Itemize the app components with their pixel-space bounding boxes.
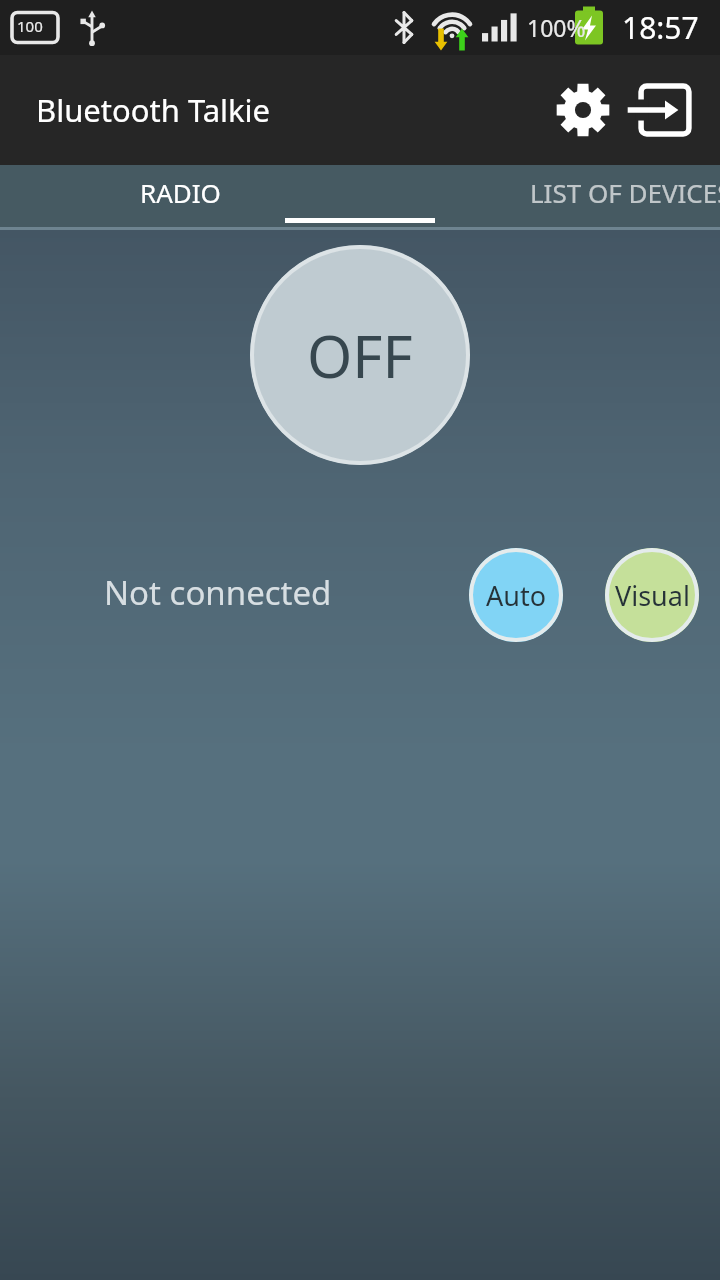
- staticText: RADIO: [140, 175, 221, 210]
- button[interactable]: Exit: [624, 69, 706, 151]
- staticText: Visual: [615, 577, 690, 614]
- staticText: OFF: [307, 316, 413, 395]
- button[interactable]: Visual: [605, 548, 699, 642]
- staticText: 100: [17, 16, 43, 36]
- staticText: LIST OF DEVICES: [530, 175, 720, 210]
- button[interactable]: Auto: [469, 548, 563, 642]
- staticText: 18:57: [622, 7, 699, 48]
- button[interactable]: OFF: [250, 245, 470, 465]
- staticText: 100%: [527, 12, 586, 43]
- button[interactable]: LIST OF DEVICES: [360, 165, 720, 230]
- staticText: Auto: [486, 577, 547, 614]
- button[interactable]: RADIO: [0, 165, 360, 230]
- button[interactable]: Settings: [542, 69, 624, 151]
- staticText: Not connected: [104, 570, 332, 615]
- staticText: Bluetooth Talkie: [36, 89, 271, 131]
